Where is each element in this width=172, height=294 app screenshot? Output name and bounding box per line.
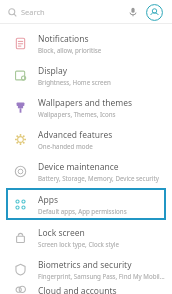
button[interactable]: Device maintenance (0, 155, 172, 187)
staticText: Display (38, 65, 67, 77)
button[interactable]: Voice search (124, 3, 142, 21)
staticText: Device maintenance (38, 161, 119, 173)
staticText: Screen lock type, Clock style (38, 240, 119, 248)
staticText: Biometrics and security (38, 259, 132, 271)
staticText: Advanced features (38, 129, 113, 141)
staticText: Lock screen (38, 227, 85, 239)
button[interactable]: Apps (6, 188, 166, 220)
staticText: Search (21, 7, 45, 17)
staticText: Battery, Storage, Memory, Device securit… (38, 174, 159, 182)
staticText: Wallpapers, Themes, Icons (38, 110, 116, 118)
staticText: Block, allow, prioritise (38, 46, 102, 54)
button[interactable]: Biometrics and security (0, 253, 172, 285)
button[interactable]: Display (0, 59, 172, 91)
button[interactable]: Account (144, 2, 164, 22)
button[interactable]: Search (8, 7, 124, 17)
button[interactable]: Advanced features (0, 123, 172, 155)
staticText: Wallpapers and themes (38, 97, 133, 109)
staticText: Notifications (38, 33, 89, 45)
staticText: Fingerprint, Samsung Pass, Find My Mobil… (38, 272, 166, 280)
button[interactable]: Cloud and accounts (0, 285, 172, 294)
staticText: Brightness, Home screen (38, 78, 111, 86)
staticText: One-handed mode (38, 142, 93, 150)
button[interactable]: Notifications (0, 27, 172, 59)
button[interactable]: Lock screen (0, 221, 172, 253)
staticText: Default apps, App permissions (38, 207, 127, 215)
staticText: Cloud and accounts (38, 285, 117, 294)
button[interactable]: Wallpapers and themes (0, 91, 172, 123)
staticText: Apps (38, 194, 58, 206)
